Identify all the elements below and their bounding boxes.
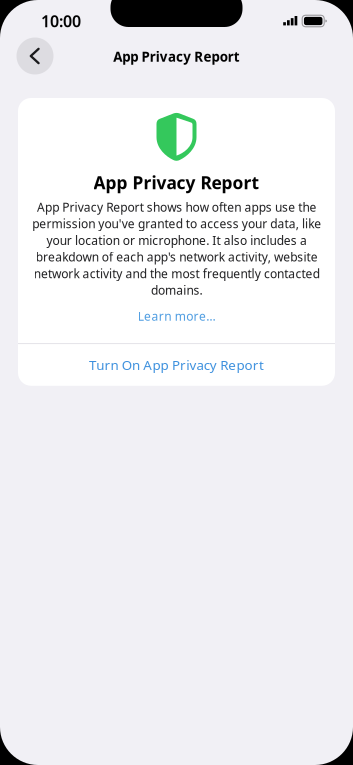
staticText: App Privacy Report shows how often apps … (32, 199, 321, 298)
staticText: Turn On App Privacy Report (89, 356, 264, 374)
button[interactable]: Turn On App Privacy Report (18, 344, 335, 386)
staticText: App Privacy Report (93, 171, 259, 194)
button[interactable]: Back (13, 35, 57, 79)
button[interactable]: Learn more… (18, 301, 335, 331)
staticText: 10:00 (41, 10, 81, 32)
staticText: App Privacy Report (113, 48, 240, 65)
staticText: Learn more… (138, 308, 215, 324)
